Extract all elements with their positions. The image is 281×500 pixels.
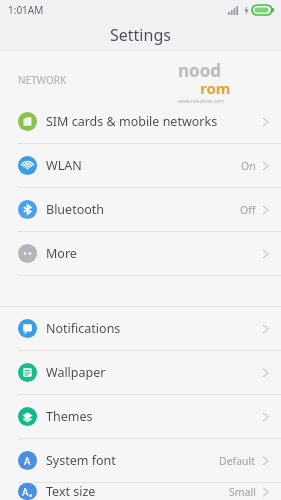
button[interactable]: Wallpaper	[0, 351, 281, 394]
staticText: Small	[229, 485, 256, 499]
staticText: System font	[46, 452, 219, 469]
staticText: NETWORK	[18, 73, 67, 87]
staticText: Off	[240, 203, 256, 217]
button[interactable]: WLAN	[0, 144, 281, 187]
staticText: 1:01AM	[8, 3, 44, 17]
button[interactable]: Themes	[0, 395, 281, 438]
staticText: Themes	[46, 408, 263, 425]
button[interactable]: Bluetooth	[0, 188, 281, 231]
button[interactable]: Notifications	[0, 307, 281, 350]
staticText: Wallpaper	[46, 364, 263, 381]
staticText: WLAN	[46, 157, 241, 174]
staticText: Text size	[46, 483, 229, 500]
staticText: Notifications	[46, 320, 263, 337]
button[interactable]: A	[0, 439, 281, 482]
staticText: nood	[178, 59, 222, 82]
staticText: Settings	[110, 24, 171, 46]
staticText: www.needrom.com	[178, 98, 224, 105]
staticText: A	[24, 454, 31, 468]
staticText: On	[241, 159, 256, 173]
staticText: A	[22, 485, 29, 499]
button[interactable]: A	[0, 483, 281, 500]
staticText: Bluetooth	[46, 201, 240, 218]
staticText: rom	[200, 78, 231, 98]
button[interactable]: SIM cards & mobile networks	[0, 100, 281, 143]
staticText: Default	[219, 454, 256, 468]
staticText: More	[46, 245, 263, 262]
staticText: SIM cards & mobile networks	[46, 113, 263, 130]
button[interactable]: More	[0, 232, 281, 275]
staticText: a	[29, 491, 33, 499]
